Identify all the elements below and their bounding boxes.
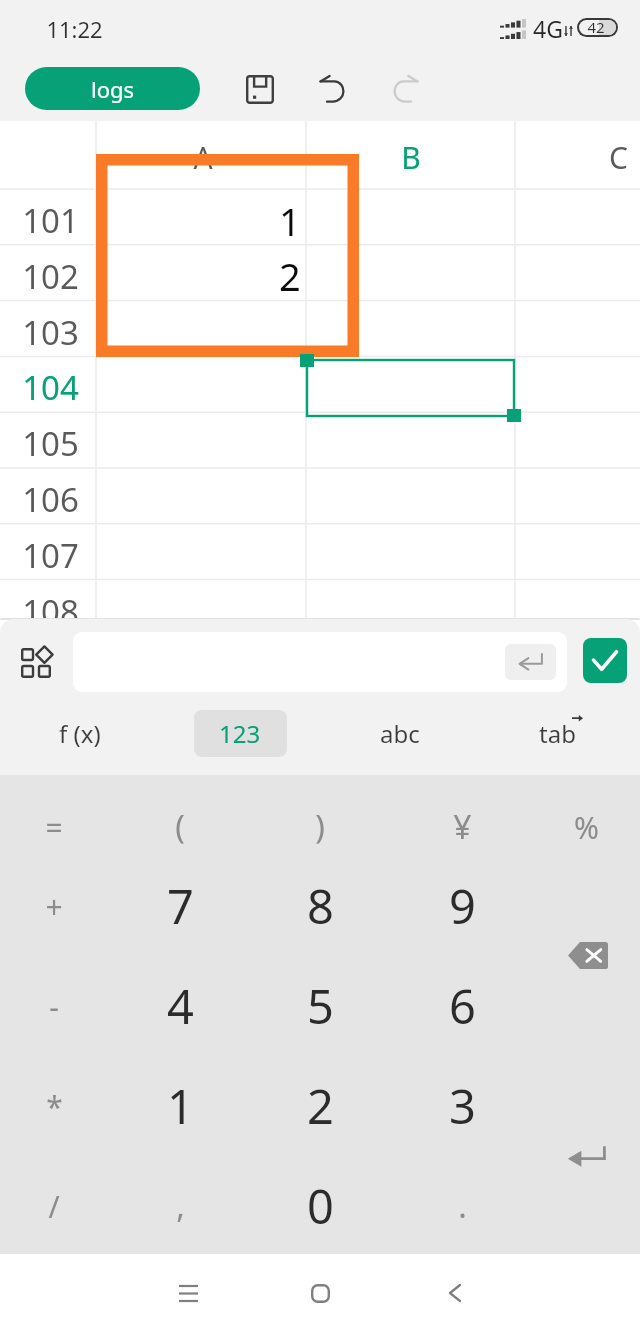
staticText: 103 — [22, 310, 79, 355]
button[interactable]: 8 — [255, 858, 385, 954]
staticText: 0 — [307, 1174, 334, 1238]
staticText: 11:22 — [46, 14, 103, 44]
button[interactable]: A — [143, 127, 263, 187]
staticText: logs — [91, 74, 135, 104]
button[interactable]: = — [0, 782, 109, 872]
staticText: % — [574, 807, 599, 848]
staticText: 8 — [307, 874, 334, 938]
button[interactable]: Home — [290, 1263, 350, 1323]
button[interactable]: tab — [482, 699, 632, 767]
staticText: 4G — [533, 13, 563, 44]
button[interactable]: + — [0, 861, 109, 951]
staticText: . — [458, 1184, 467, 1228]
staticText: 4 — [167, 974, 194, 1038]
button[interactable]: 9 — [397, 858, 527, 954]
button[interactable]: 103 — [2, 304, 98, 360]
button[interactable]: B — [351, 127, 471, 187]
staticText: tab — [539, 717, 576, 750]
staticText: 5 — [307, 974, 334, 1038]
button[interactable]: ( — [115, 779, 245, 875]
button[interactable]: 102 — [2, 248, 98, 304]
button[interactable]: 104 — [2, 359, 98, 415]
staticText: ) — [315, 805, 325, 849]
button[interactable]: Functions — [12, 639, 60, 687]
button[interactable]: 0 — [255, 1158, 385, 1254]
staticText: 9 — [449, 874, 476, 938]
button[interactable]: 7 — [115, 858, 245, 954]
staticText: 1 — [167, 1074, 194, 1138]
button[interactable]: 123 — [165, 699, 315, 767]
button[interactable]: abc — [325, 699, 475, 767]
button[interactable]: Undo — [308, 64, 358, 114]
button[interactable]: , — [115, 1158, 245, 1254]
staticText: 2 — [307, 1074, 334, 1138]
button[interactable]: Back — [425, 1263, 485, 1323]
button[interactable]: 3 — [397, 1058, 527, 1154]
button[interactable]: * — [0, 1061, 109, 1151]
button[interactable]: Recent apps — [158, 1263, 218, 1323]
button[interactable]: ¥ — [397, 779, 527, 875]
button[interactable]: % — [531, 782, 640, 872]
staticText: 123 — [219, 717, 261, 750]
staticText: 107 — [22, 533, 79, 578]
button[interactable]: 5 — [255, 958, 385, 1054]
staticText: 105 — [22, 421, 79, 466]
button[interactable]: Save — [235, 64, 285, 114]
button[interactable]: 1 — [115, 1058, 245, 1154]
button[interactable]: Confirm — [583, 638, 627, 683]
button[interactable]: - — [0, 961, 109, 1051]
staticText: 104 — [22, 365, 79, 410]
button[interactable]: 107 — [2, 527, 98, 583]
button[interactable]: ) — [255, 779, 385, 875]
staticText: C — [609, 137, 628, 178]
button[interactable]: Redo — [380, 64, 430, 114]
staticText: 42 — [587, 17, 605, 37]
staticText: / — [48, 1186, 60, 1227]
staticText: 108 — [22, 589, 79, 634]
staticText: ¥ — [453, 805, 472, 849]
staticText: abc — [380, 717, 420, 750]
button[interactable]: 101 — [2, 192, 98, 248]
button[interactable]: Newline — [505, 644, 556, 680]
button[interactable]: Enter — [552, 1124, 622, 1184]
staticText: 6 — [449, 974, 476, 1038]
staticText: B — [401, 137, 421, 178]
button[interactable]: C — [558, 127, 640, 187]
button[interactable]: / — [0, 1161, 109, 1251]
staticText: 3 — [449, 1074, 476, 1138]
button[interactable]: Newline — [73, 632, 567, 692]
button[interactable]: Backspace — [557, 925, 619, 985]
button[interactable]: 4 — [115, 958, 245, 1054]
button[interactable]: 6 — [397, 958, 527, 1054]
button[interactable]: 106 — [2, 471, 98, 527]
staticText: * — [46, 1086, 63, 1127]
staticText: 101 — [22, 198, 79, 243]
staticText: A — [193, 137, 213, 178]
staticText: , — [176, 1184, 185, 1228]
staticText: 106 — [22, 477, 79, 522]
staticText: - — [49, 986, 59, 1027]
button[interactable]: 108 — [2, 583, 98, 639]
staticText: 1 — [279, 195, 301, 247]
staticText: 102 — [22, 254, 79, 299]
staticText: = — [45, 807, 63, 848]
button[interactable]: logs — [25, 67, 200, 110]
staticText: ( — [175, 805, 185, 849]
staticText: f (x) — [59, 717, 101, 750]
staticText: + — [45, 886, 63, 927]
staticText: 7 — [167, 874, 194, 938]
button[interactable]: f (x) — [5, 699, 155, 767]
button[interactable]: 105 — [2, 415, 98, 471]
button[interactable]: 2 — [255, 1058, 385, 1154]
staticText: 2 — [279, 250, 301, 302]
